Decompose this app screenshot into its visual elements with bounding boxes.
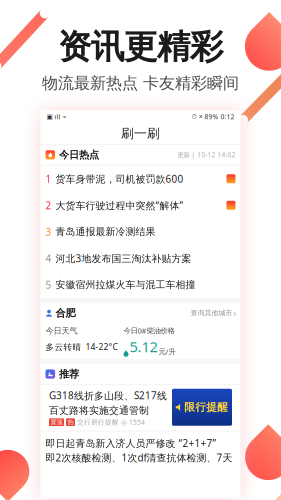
staticText: 大货车行驶过程中突然“解体” xyxy=(55,199,183,212)
staticText: 资讯更精彩 xyxy=(58,26,223,68)
staticText: 青岛通报最新冷测结果 xyxy=(55,226,155,238)
staticText: 5.12 xyxy=(129,337,157,357)
staticText: 今日0#柴油价格 xyxy=(123,325,174,336)
staticText: ◎ 1554 xyxy=(121,418,145,427)
staticText: ıll xyxy=(54,112,60,121)
staticText: 货车身带泥，司机被罚款600 xyxy=(55,172,183,185)
button[interactable]: 即日起青岛新入济人员严修改 “2+1+7” xyxy=(40,431,240,464)
staticText: › xyxy=(233,308,235,318)
staticText: 3 xyxy=(45,225,51,238)
staticText: 今日热点 xyxy=(59,148,99,161)
staticText: ▣ xyxy=(46,113,52,121)
staticText: 1 xyxy=(45,172,51,185)
staticText: 即日起青岛新入济人员严修改 “2+1+7” xyxy=(45,436,216,450)
staticText: 热 xyxy=(67,418,73,426)
staticText: 交行易行提醒 xyxy=(77,418,119,426)
staticText: 更新 | 10-12 14:02 xyxy=(177,150,235,159)
staticText: 今日天气 xyxy=(45,325,77,336)
button[interactable]: 3 xyxy=(40,218,240,245)
staticText: 4 xyxy=(45,252,51,265)
staticText: ⌁ xyxy=(62,113,66,121)
staticText: 查询其他城市 xyxy=(190,309,232,317)
staticText: G318线折多山段、S217线 xyxy=(49,389,167,402)
button[interactable]: 1 xyxy=(40,165,240,192)
staticText: 2 xyxy=(45,199,51,212)
staticText: 限行提醒 xyxy=(184,400,228,414)
staticText: 多云转晴 14-22°C xyxy=(45,341,117,352)
staticText: ⏱ xyxy=(191,113,196,120)
staticText: 合肥 xyxy=(55,307,75,319)
staticText: 5 xyxy=(45,278,51,291)
button[interactable]: 2 xyxy=(40,192,240,218)
button[interactable]: 4 xyxy=(40,245,240,271)
staticText: 河北3地发布国三淘汰补贴方案 xyxy=(55,252,191,265)
staticText: 89% xyxy=(204,112,218,121)
staticText: 置顶 xyxy=(50,418,62,426)
staticText: 刷一刷 xyxy=(121,126,160,142)
staticText: 百丈路将实施交通管制 xyxy=(49,404,149,417)
staticText: 推荐 xyxy=(59,368,79,380)
staticText: 即2次核酸检测、1次df清查抗体检测、7天 xyxy=(45,451,232,464)
staticText: 0:12 xyxy=(220,112,234,121)
button[interactable]: 查询其他城市 xyxy=(190,308,235,318)
button[interactable]: 5 xyxy=(40,271,240,298)
staticText: 安徽宿州拉煤火车与混工车相撞 xyxy=(55,279,195,291)
staticText: 元/升 xyxy=(158,346,175,357)
staticText: ✕ xyxy=(198,113,202,120)
staticText: 物流最新热点 卡友精彩瞬间 xyxy=(42,73,239,93)
button[interactable]: G318线折多山段、S217线 xyxy=(44,385,237,431)
